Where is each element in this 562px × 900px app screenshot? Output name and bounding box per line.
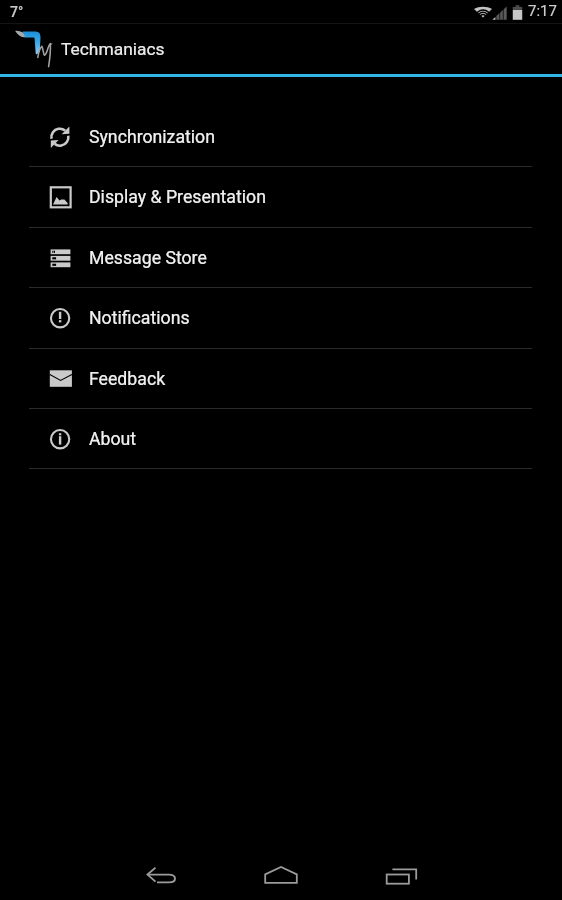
staticText: Synchronization (89, 127, 215, 148)
button[interactable]: Display & Presentation (0, 167, 562, 227)
button[interactable]: Notifications (0, 288, 562, 348)
button[interactable]: Message Store (0, 228, 562, 288)
staticText: Notifications (89, 308, 190, 329)
staticText: 7° (10, 4, 24, 20)
button[interactable]: Home (221, 856, 341, 900)
button[interactable]: Recent apps (341, 856, 461, 900)
staticText: Techmaniacs (61, 39, 165, 59)
staticText: 7:17 (528, 2, 557, 20)
button[interactable]: Back (101, 856, 221, 900)
staticText: Display & Presentation (89, 187, 266, 208)
staticText: About (89, 429, 137, 450)
staticText: Feedback (89, 369, 166, 390)
button[interactable]: About (0, 409, 562, 469)
staticText: Message Store (89, 248, 207, 269)
button[interactable]: Feedback (0, 349, 562, 409)
button[interactable]: Synchronization (0, 107, 562, 167)
